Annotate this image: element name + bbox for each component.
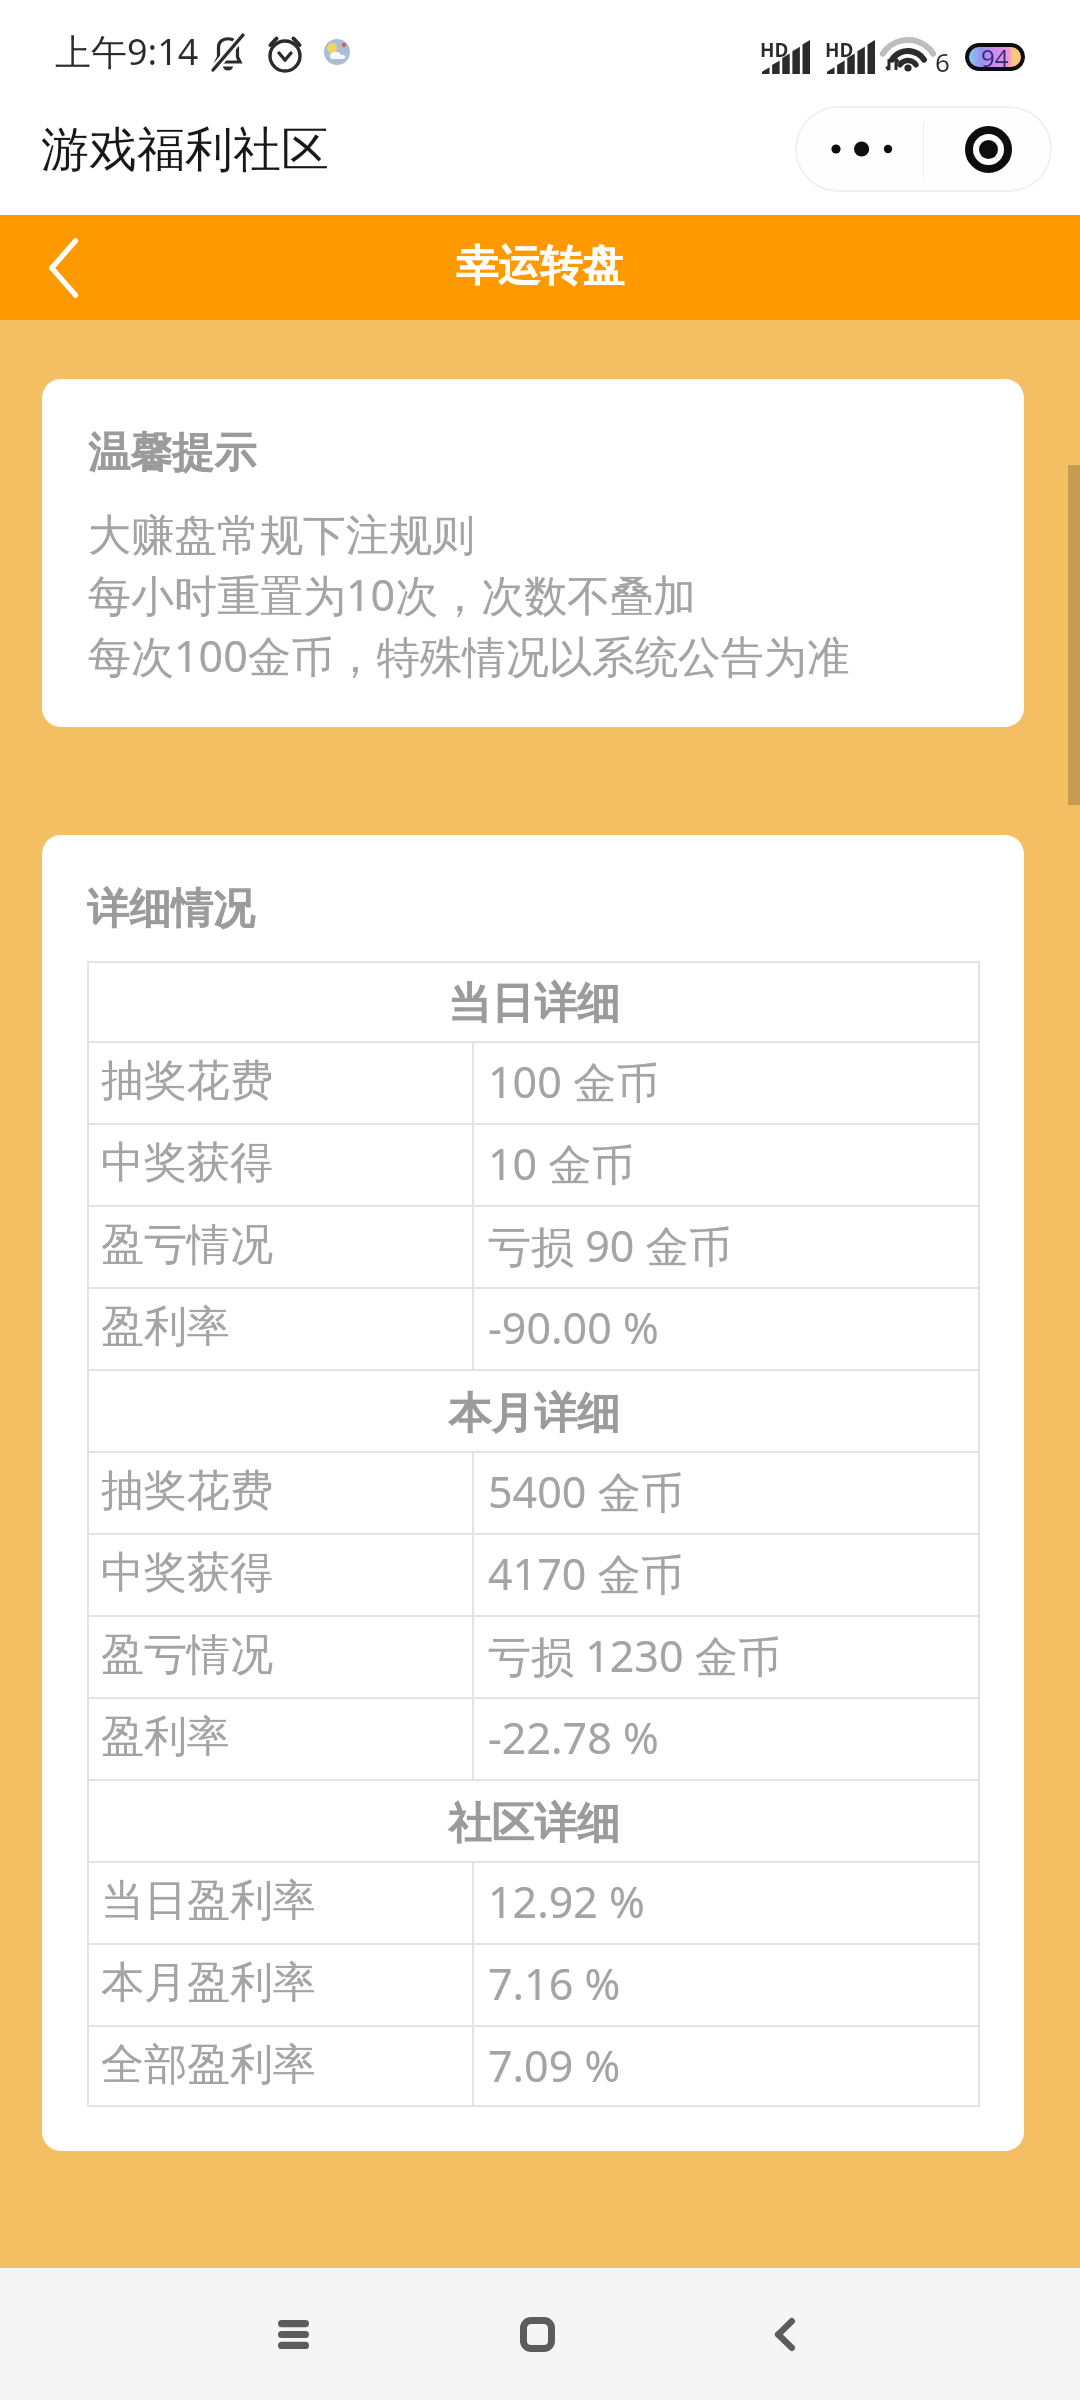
staticText: 7.16 % bbox=[488, 1954, 621, 2013]
staticText: 抽奖花费 bbox=[101, 1054, 273, 1108]
staticText: 上午9:14 bbox=[55, 27, 199, 76]
staticText: 游戏福利社区 bbox=[41, 120, 329, 180]
staticText: 本月盈利率 bbox=[101, 1956, 316, 2010]
button[interactable]: Back bbox=[18, 222, 110, 314]
staticText: 本月详细 bbox=[448, 1387, 620, 1441]
staticText: 94 bbox=[981, 43, 1009, 69]
staticText: 全部盈利率 bbox=[101, 2038, 316, 2092]
staticText: 100 金币 bbox=[488, 1052, 659, 1111]
button[interactable]: More bbox=[795, 106, 923, 192]
staticText: 盈亏情况 bbox=[101, 1218, 273, 1272]
staticText: 6 bbox=[935, 44, 950, 79]
button[interactable]: Back bbox=[738, 2287, 832, 2381]
staticText: 详细情况 bbox=[87, 883, 255, 936]
staticText: 盈亏情况 bbox=[101, 1628, 273, 1682]
staticText: 盈利率 bbox=[101, 1710, 230, 1764]
staticText: 亏损 90 金币 bbox=[488, 1216, 732, 1275]
staticText: 5400 金币 bbox=[488, 1462, 684, 1521]
staticText: 4170 金币 bbox=[488, 1544, 684, 1603]
staticText: 亏损 1230 金币 bbox=[488, 1626, 781, 1685]
staticText: HD bbox=[760, 37, 789, 63]
staticText: 盈利率 bbox=[101, 1300, 230, 1354]
staticText: 抽奖花费 bbox=[101, 1464, 273, 1518]
staticText: 温馨提示 bbox=[88, 427, 256, 480]
staticText: -22.78 % bbox=[488, 1708, 659, 1767]
staticText: -90.00 % bbox=[488, 1298, 659, 1357]
staticText: 12.92 % bbox=[488, 1872, 645, 1931]
staticText: 当日详细 bbox=[448, 977, 620, 1031]
staticText: 10 金币 bbox=[488, 1134, 635, 1193]
staticText: HD bbox=[825, 37, 854, 63]
staticText: 幸运转盘 bbox=[456, 240, 624, 293]
staticText: 大赚盘常规下注规则 每小时重置为10次，次数不叠加 每次100金币，特殊情况以系… bbox=[88, 509, 850, 685]
staticText: 中奖获得 bbox=[101, 1546, 273, 1600]
staticText: 社区详细 bbox=[448, 1797, 620, 1851]
staticText: 当日盈利率 bbox=[101, 1874, 316, 1928]
button[interactable]: Recent apps bbox=[246, 2287, 340, 2381]
staticText: 7.09 % bbox=[488, 2036, 621, 2095]
staticText: 中奖获得 bbox=[101, 1136, 273, 1190]
button[interactable]: Close mini program bbox=[924, 106, 1052, 192]
button[interactable]: Home bbox=[490, 2287, 584, 2381]
